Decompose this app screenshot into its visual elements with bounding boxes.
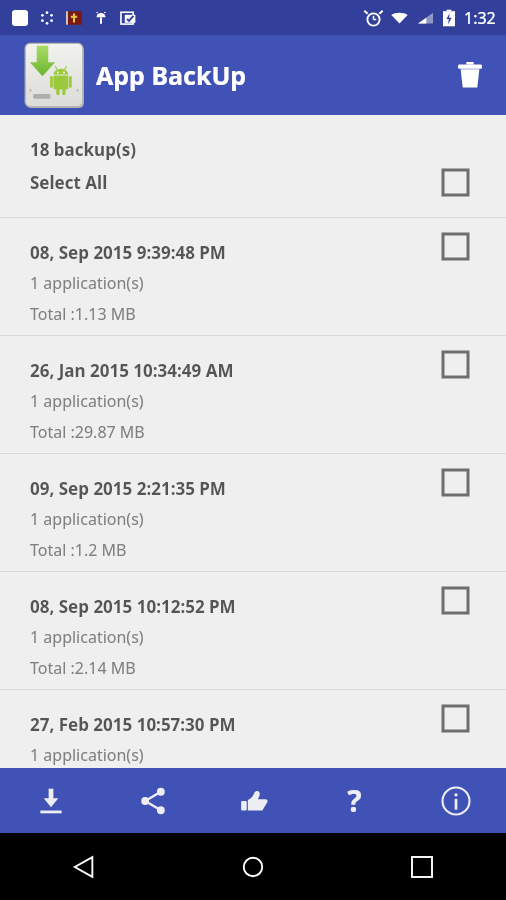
button[interactable]: Rate this app [203, 768, 304, 833]
button[interactable]: Delete backups [446, 51, 494, 99]
staticText: 1 application(s) [30, 508, 144, 530]
button[interactable]: Select backup [443, 170, 473, 200]
staticText: 08, Sep 2015 9:39:48 PM [30, 241, 226, 264]
staticText: 1:32 [464, 7, 496, 29]
button[interactable]: Share [102, 768, 203, 833]
staticText: ? [347, 780, 362, 821]
staticText: Total :2.14 MB [30, 657, 136, 679]
staticText: 1 application(s) [30, 744, 144, 766]
staticText: 1 application(s) [30, 272, 144, 294]
staticText: 08, Sep 2015 10:12:52 PM [30, 595, 236, 618]
button[interactable]: 09, Sep 2015 2:21:35 PM [0, 454, 506, 571]
button[interactable]: Help [304, 768, 405, 833]
staticText: Total :29.87 MB [30, 421, 145, 443]
staticText: Total :1.13 MB [30, 303, 136, 325]
button[interactable]: Home [168, 833, 337, 900]
button[interactable]: Select backup [443, 234, 473, 264]
button[interactable]: 27, Feb 2015 10:57:30 PM [0, 690, 506, 768]
button[interactable]: Select backup [443, 352, 473, 382]
staticText: 1 application(s) [30, 626, 144, 648]
button[interactable]: Select backup [443, 470, 473, 500]
button[interactable]: 08, Sep 2015 9:39:48 PM [0, 218, 506, 335]
staticText: 26, Jan 2015 10:34:49 AM [30, 359, 234, 382]
staticText: 18 backup(s) [30, 138, 136, 161]
staticText: Select All [30, 171, 108, 194]
staticText: 27, Feb 2015 10:57:30 PM [30, 713, 236, 736]
button[interactable]: 26, Jan 2015 10:34:49 AM [0, 336, 506, 453]
staticText: 09, Sep 2015 2:21:35 PM [30, 477, 226, 500]
button[interactable]: Restore backup [0, 768, 102, 833]
button[interactable]: Select backup [443, 706, 473, 736]
button[interactable]: 08, Sep 2015 10:12:52 PM [0, 572, 506, 689]
button[interactable]: Select backup [443, 588, 473, 618]
button[interactable]: Recent apps [337, 833, 506, 900]
button[interactable]: 18 backup(s) [0, 115, 506, 217]
staticText: Total :1.2 MB [30, 539, 127, 561]
button[interactable]: About [405, 768, 506, 833]
button[interactable]: Back [0, 833, 168, 900]
staticText: App BackUp [96, 58, 247, 92]
staticText: 1 application(s) [30, 390, 144, 412]
